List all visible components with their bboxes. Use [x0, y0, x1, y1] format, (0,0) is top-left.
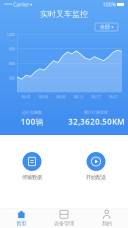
staticText: 06-17 — [91, 94, 100, 99]
button[interactable]: 全部 — [95, 23, 118, 31]
button[interactable]: 开始配送 — [64, 152, 128, 181]
staticText: 100辆 — [20, 116, 43, 127]
staticText: •••• — [4, 1, 12, 8]
staticText: 900 — [8, 46, 14, 52]
staticText: 06-13 — [74, 94, 83, 99]
staticText: 传输数据 — [22, 174, 42, 181]
staticText: 实时叉车监控 — [40, 9, 88, 19]
button[interactable]: 我的 — [85, 210, 128, 227]
button[interactable]: 首页 — [0, 210, 43, 227]
staticText: 06-01 — [21, 94, 30, 99]
button[interactable]: 传输数据 — [0, 152, 64, 181]
staticText: 首页 — [16, 220, 26, 227]
staticText: 06-09 — [56, 94, 65, 99]
staticText: 06-21 — [109, 94, 118, 99]
staticText: 1200 — [6, 32, 14, 37]
staticText: ▾ — [111, 25, 113, 29]
staticText: 开始配送 — [86, 174, 106, 181]
staticText: Carrier — [12, 1, 29, 8]
staticText: 运行车辆数 — [22, 110, 42, 115]
staticText: 300 — [8, 75, 14, 81]
staticText: 100% — [102, 1, 115, 8]
staticText: 32,3620.50KM — [68, 116, 124, 127]
button[interactable]: 设备管理 — [43, 210, 85, 227]
staticText: 设备管理 — [54, 220, 74, 227]
staticText: 我的 — [102, 220, 112, 227]
staticText: 累计行驶里程 — [84, 110, 108, 115]
staticText: 全部 — [100, 24, 110, 30]
staticText: ▾ — [29, 2, 32, 7]
staticText: 06-05 — [39, 94, 48, 99]
staticText: 600 — [8, 61, 14, 66]
